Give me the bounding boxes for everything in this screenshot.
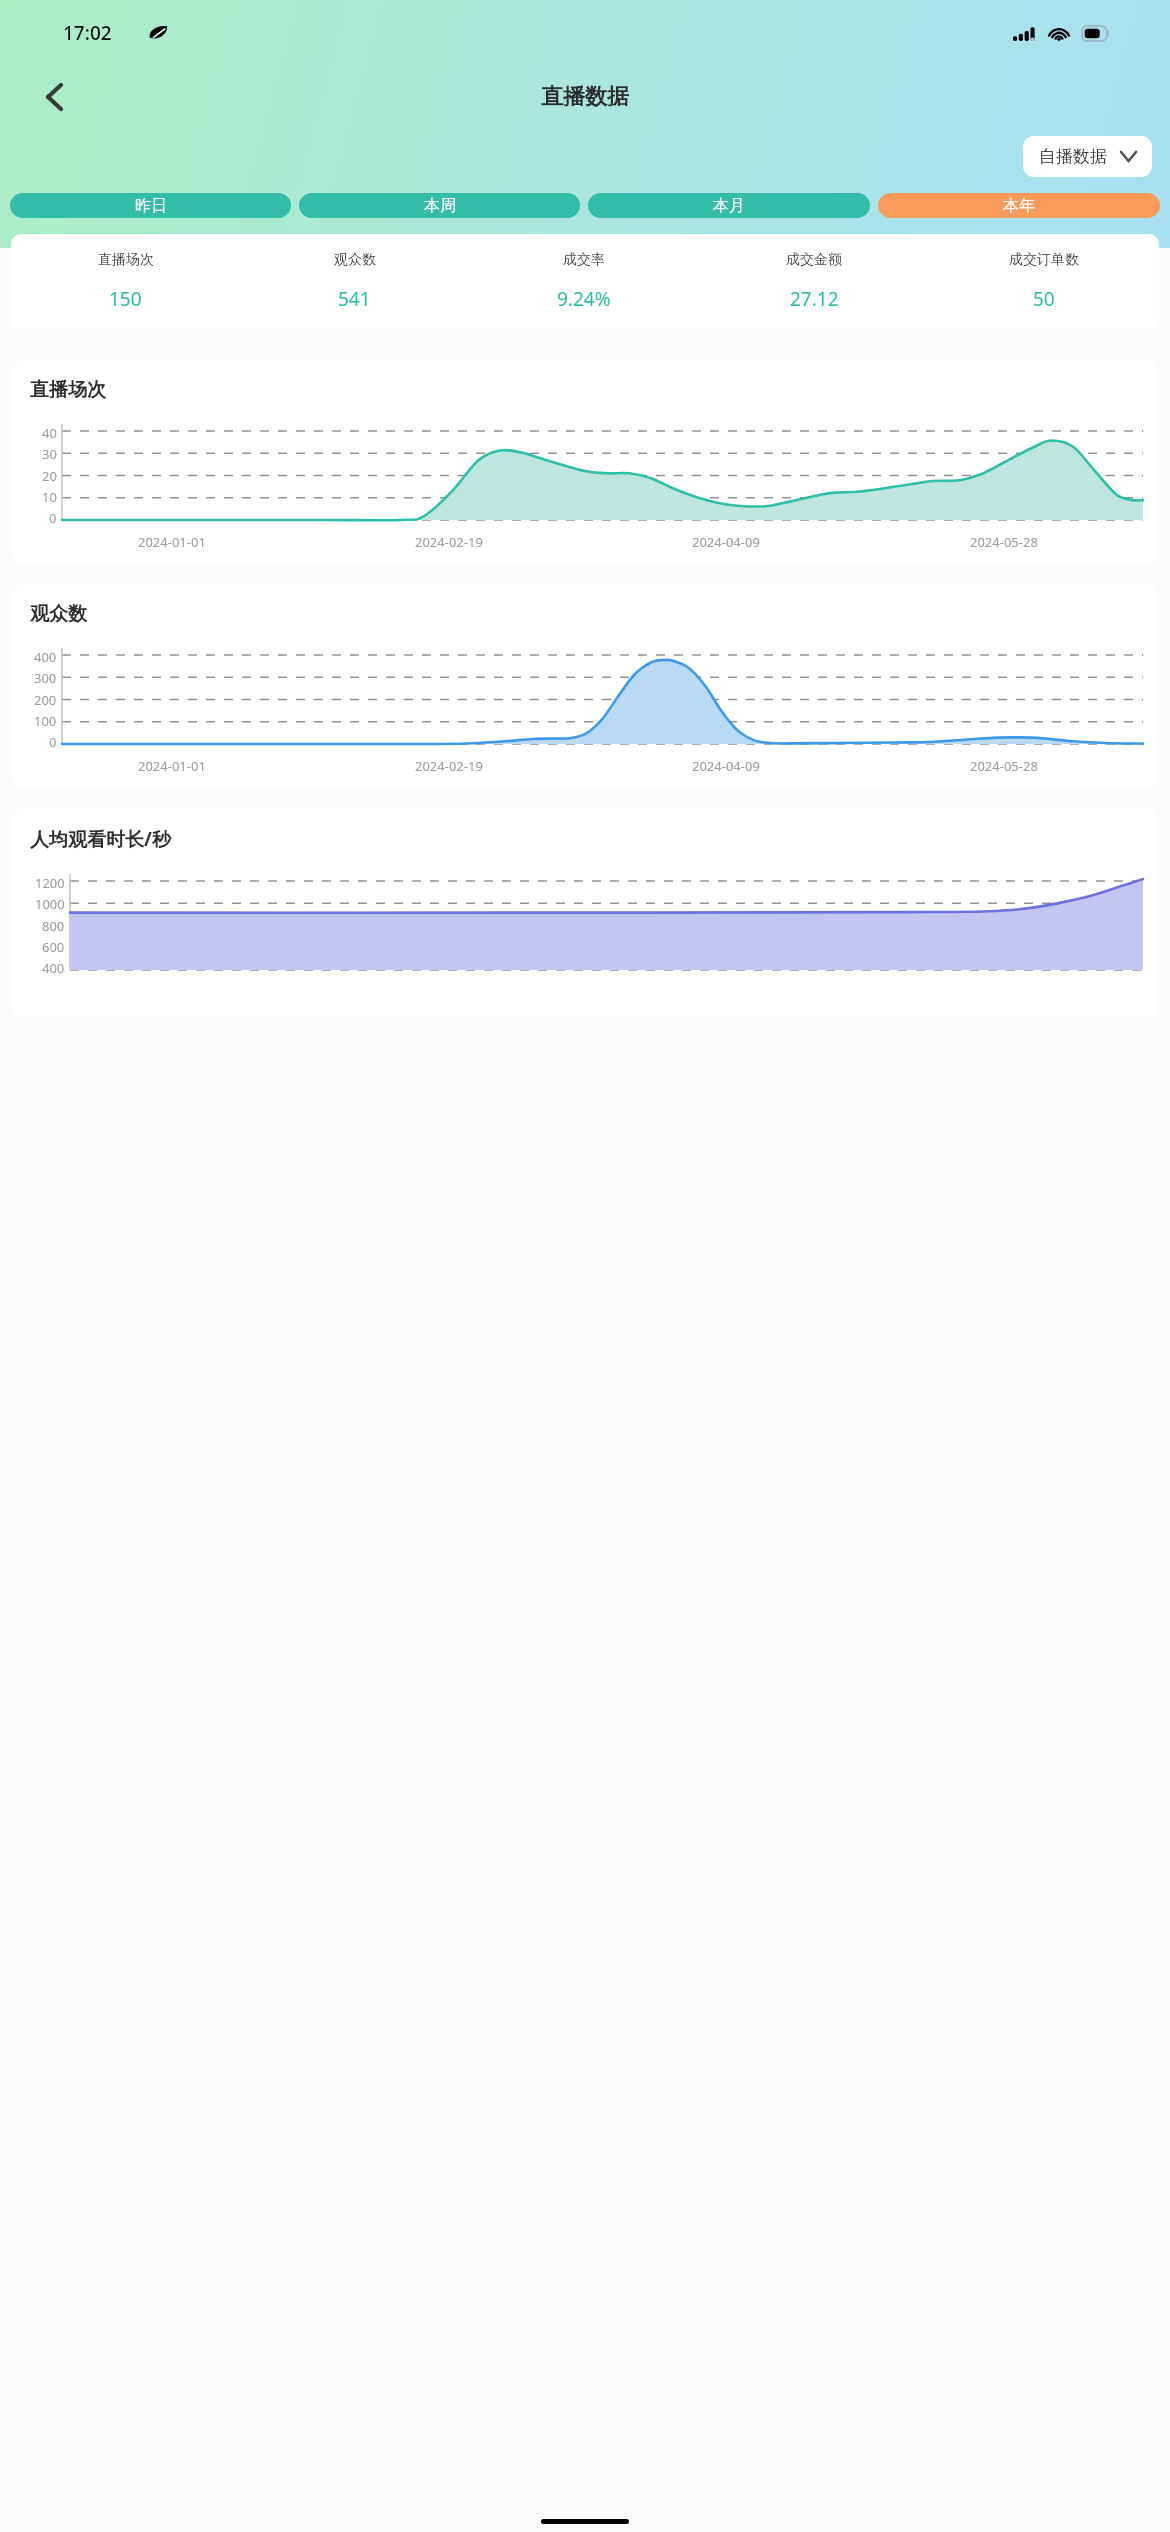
staticText: 2024-04-09	[692, 533, 760, 551]
staticText: 10	[42, 488, 57, 506]
button[interactable]: 自播数据	[1023, 136, 1152, 177]
staticText: 2024-01-01	[138, 533, 206, 551]
button[interactable]: 观众数	[13, 584, 1157, 789]
staticText: 直播场次	[98, 251, 154, 269]
staticText: 观众数	[30, 602, 87, 626]
staticText: 40	[42, 424, 57, 442]
staticText: 0	[49, 509, 57, 527]
staticText: 本周	[424, 196, 456, 216]
staticText: 2024-01-01	[138, 757, 206, 775]
staticText: 17:02	[63, 20, 112, 46]
staticText: 20	[42, 467, 57, 485]
staticText: 人均观看时长/秒	[30, 826, 171, 852]
staticText: 400	[42, 959, 65, 977]
staticText: 150	[109, 286, 142, 312]
staticText: 昨日	[135, 196, 167, 216]
button[interactable]: 本周	[299, 193, 580, 218]
staticText: 2024-04-09	[692, 757, 760, 775]
button[interactable]: Back	[30, 73, 78, 121]
staticText: 2024-02-19	[415, 533, 483, 551]
staticText: 1000	[35, 895, 65, 913]
staticText: 50	[1033, 286, 1055, 312]
staticText: 200	[34, 691, 57, 709]
staticText: 0	[49, 733, 57, 751]
staticText: 观众数	[334, 251, 376, 269]
staticText: 400	[34, 648, 57, 666]
button[interactable]: 直播场次	[11, 234, 1159, 329]
staticText: 直播数据	[541, 83, 629, 111]
staticText: 2024-05-28	[970, 533, 1038, 551]
staticText: 成交金额	[786, 251, 842, 269]
button[interactable]: 直播场次	[13, 360, 1157, 565]
staticText: 100	[34, 712, 57, 730]
staticText: 成交订单数	[1009, 251, 1079, 269]
staticText: 600	[42, 938, 65, 956]
staticText: 2024-02-19	[415, 757, 483, 775]
button[interactable]: 本年	[878, 193, 1160, 218]
staticText: 成交率	[563, 251, 605, 269]
staticText: 541	[338, 286, 371, 312]
staticText: 9.24%	[557, 286, 611, 312]
button[interactable]: 本月	[588, 193, 870, 218]
staticText: 800	[42, 917, 65, 935]
staticText: 30	[42, 445, 57, 463]
staticText: 本年	[1003, 196, 1035, 216]
staticText: 直播场次	[30, 378, 106, 402]
staticText: 27.12	[790, 286, 839, 312]
staticText: 本月	[713, 196, 745, 216]
staticText: 自播数据	[1039, 146, 1107, 167]
staticText: 300	[34, 669, 57, 687]
staticText: 1200	[35, 874, 65, 892]
button[interactable]: 人均观看时长/秒	[13, 808, 1157, 1017]
button[interactable]: 昨日	[10, 193, 291, 218]
staticText: 2024-05-28	[970, 757, 1038, 775]
